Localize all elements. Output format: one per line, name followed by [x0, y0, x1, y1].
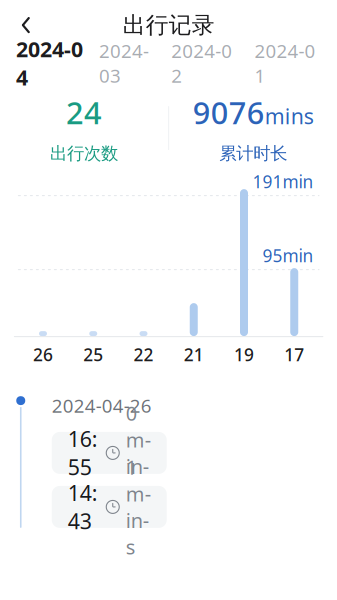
- staticText: 2024-04-26: [52, 393, 152, 418]
- button[interactable]: 2024-01: [248, 38, 321, 88]
- staticText: 出行记录: [123, 11, 215, 39]
- button[interactable]: Back: [6, 7, 46, 43]
- staticText: 出行次数: [50, 143, 118, 164]
- staticText: 2024-02: [171, 38, 232, 88]
- button[interactable]: 16:55: [52, 432, 167, 474]
- staticText: mins: [265, 102, 314, 130]
- staticText: 19: [234, 343, 254, 366]
- staticText: 9076: [193, 92, 265, 133]
- staticText: 191min: [252, 170, 313, 193]
- staticText: 16:55: [68, 425, 98, 481]
- button[interactable]: 2024-02: [165, 38, 238, 88]
- staticText: 21: [184, 343, 204, 366]
- staticText: 14:43: [68, 479, 98, 535]
- staticText: 1mins: [126, 454, 151, 560]
- button[interactable]: 2024-03: [93, 38, 155, 88]
- staticText: 25: [83, 343, 103, 366]
- button[interactable]: 2024-04: [16, 35, 83, 91]
- staticText: 0mins: [126, 400, 151, 506]
- staticText: 2024-04: [16, 35, 83, 91]
- staticText: 2024-03: [99, 38, 149, 88]
- staticText: 累计时长: [219, 143, 287, 164]
- staticText: 22: [133, 343, 153, 366]
- staticText: 95min: [262, 244, 313, 267]
- staticText: 17: [284, 343, 304, 366]
- staticText: 26: [33, 343, 53, 366]
- staticText: 2024-01: [254, 38, 315, 88]
- staticText: 24: [66, 92, 102, 133]
- button[interactable]: 14:43: [52, 486, 167, 528]
